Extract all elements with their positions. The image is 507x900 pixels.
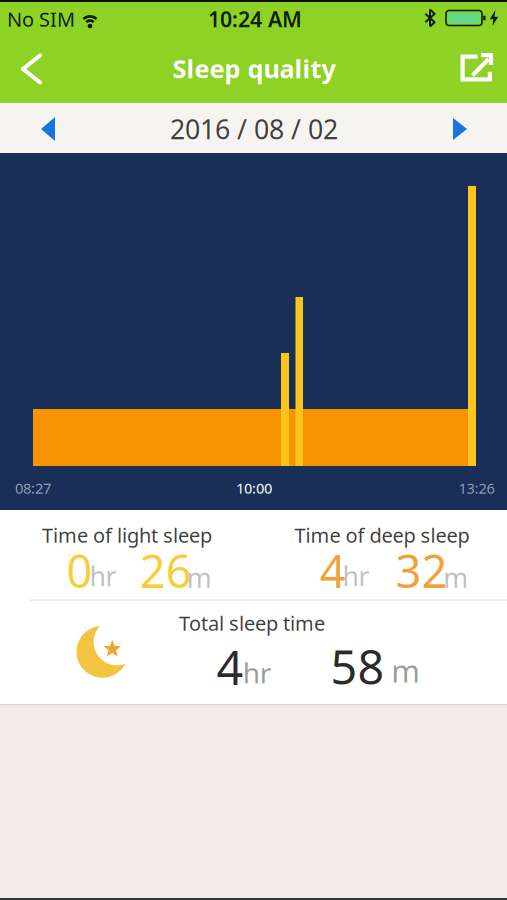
staticText: 32	[396, 540, 448, 601]
staticText: Time of light sleep	[42, 522, 212, 548]
staticText: Total sleep time	[179, 610, 325, 636]
staticText: m	[391, 650, 420, 691]
staticText: m	[187, 560, 212, 595]
staticText: hr	[343, 558, 370, 594]
staticText: 2016 / 08 / 02	[170, 111, 338, 147]
staticText: 4	[216, 636, 243, 698]
button[interactable]: Back	[10, 50, 54, 88]
staticText: hr	[89, 558, 116, 594]
staticText: 13:26	[458, 478, 494, 498]
staticText: Time of deep sleep	[294, 522, 469, 548]
button[interactable]: Share	[451, 51, 495, 89]
button[interactable]: Previous day	[38, 116, 58, 142]
button[interactable]: Next day	[449, 116, 469, 142]
staticText: No SIM	[7, 6, 75, 32]
staticText: 58	[330, 635, 384, 697]
staticText: Sleep quality	[172, 52, 335, 85]
staticText: hr	[243, 654, 272, 691]
staticText: 08:27	[15, 478, 51, 498]
staticText: m	[443, 560, 468, 595]
staticText: 10:00	[236, 478, 272, 498]
staticText: 4	[320, 540, 346, 601]
staticText: 0	[66, 540, 92, 601]
staticText: 10:24 AM	[208, 5, 302, 33]
staticText: 26	[140, 540, 192, 601]
